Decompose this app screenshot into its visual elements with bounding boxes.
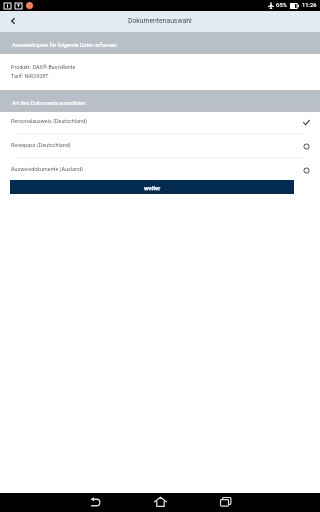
button[interactable]: Back [0,11,21,32]
button[interactable]: Personalausweis (Deutschland) [0,112,320,133]
staticText: Ausweiskopien für folgende Daten erfasse… [12,42,118,48]
staticText: Produkt: DAX®-BasisRente [11,64,76,70]
staticText: Personalausweis (Deutschland) [11,118,301,124]
button[interactable]: Ausweisdokumente (Ausland) [0,158,320,180]
staticText: 65% [276,2,287,9]
button[interactable]: Reisepass (Deutschland) [0,134,320,157]
staticText: Ausweisdokumente (Ausland) [11,166,301,172]
staticText: 11:26 [302,2,317,9]
staticText: weiter [144,184,161,191]
button[interactable]: Recent apps [213,493,237,512]
button[interactable]: Back [83,493,107,512]
staticText: Dokumentenauswahl [128,17,192,25]
button[interactable]: weiter [10,180,294,194]
button[interactable]: Home [148,493,172,512]
staticText: Art des Dokuments auswählen: [12,100,87,106]
staticText: Tarif: NIR2928T [11,73,49,79]
staticText: Reisepass (Deutschland) [11,142,301,148]
